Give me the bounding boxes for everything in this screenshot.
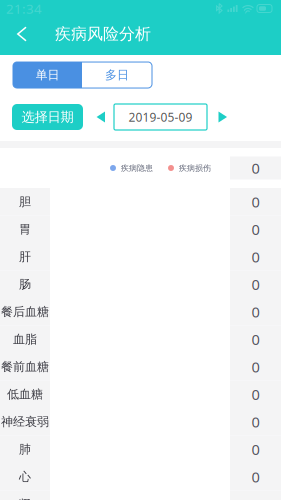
button[interactable]: Back	[0, 15, 44, 53]
button[interactable]: 多日	[82, 62, 152, 88]
button[interactable]: 肾	[0, 490, 281, 500]
staticText: 胃	[19, 222, 31, 237]
staticText: 0	[251, 192, 259, 211]
staticText: 心	[19, 469, 31, 484]
staticText: 多日	[105, 68, 129, 82]
button[interactable]: 餐后血糖	[0, 298, 281, 325]
staticText: 单日	[35, 68, 59, 82]
button[interactable]: 神经衰弱	[0, 408, 281, 435]
staticText: 0	[251, 467, 259, 486]
staticText: 疾病损伤	[179, 163, 211, 173]
button[interactable]: 肺	[0, 435, 281, 463]
staticText: 0	[251, 219, 259, 239]
button[interactable]: 餐前血糖	[0, 353, 281, 380]
staticText: 神经衰弱	[1, 414, 49, 429]
staticText: 低血糖	[7, 387, 43, 402]
staticText: 0	[251, 329, 259, 349]
staticText: 0	[251, 302, 259, 321]
staticText: 餐后血糖	[1, 304, 49, 319]
button[interactable]: 低血糖	[0, 380, 281, 408]
button[interactable]: 肠	[0, 270, 281, 298]
staticText: 2019-05-09	[128, 109, 192, 125]
button[interactable]: Next day	[212, 104, 234, 130]
staticText: 0	[251, 158, 259, 178]
staticText: 肺	[19, 442, 31, 457]
staticText: 选择日期	[21, 109, 73, 125]
staticText: 疾病隐患	[121, 163, 153, 173]
staticText: 0	[251, 384, 259, 404]
button[interactable]: 心	[0, 463, 281, 490]
button[interactable]: 单日	[13, 62, 82, 88]
staticText: 0	[251, 439, 259, 459]
button[interactable]: 血脂	[0, 325, 281, 353]
staticText: 疾病风险分析	[55, 24, 151, 44]
staticText: 肝	[19, 249, 31, 264]
button[interactable]: 选择日期	[12, 104, 83, 130]
staticText: 0	[251, 357, 259, 376]
staticText: 肾	[19, 497, 31, 500]
button[interactable]: 胆	[0, 188, 281, 215]
button[interactable]: 肝	[0, 243, 281, 270]
staticText: 0	[251, 247, 259, 266]
staticText: 21:34	[6, 0, 42, 17]
staticText: 血脂	[13, 332, 37, 347]
staticText: 胆	[19, 194, 31, 209]
staticText: 0	[251, 274, 259, 294]
button[interactable]: Previous day	[90, 104, 112, 130]
button[interactable]: 胃	[0, 215, 281, 243]
staticText: 0	[251, 412, 259, 431]
staticText: 肠	[19, 277, 31, 292]
staticText: 餐前血糖	[1, 359, 49, 374]
